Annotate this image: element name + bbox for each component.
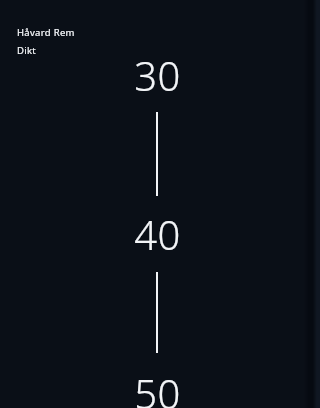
staticText: 50 [134, 366, 181, 408]
button[interactable]: Decades 30 40 50 [126, 48, 188, 408]
staticText: 40 [134, 207, 181, 261]
staticText: 30 [134, 48, 181, 102]
staticText: Dikt [17, 44, 37, 57]
button[interactable]: Håvard Rem [16, 26, 76, 57]
staticText: Håvard Rem [17, 26, 75, 39]
